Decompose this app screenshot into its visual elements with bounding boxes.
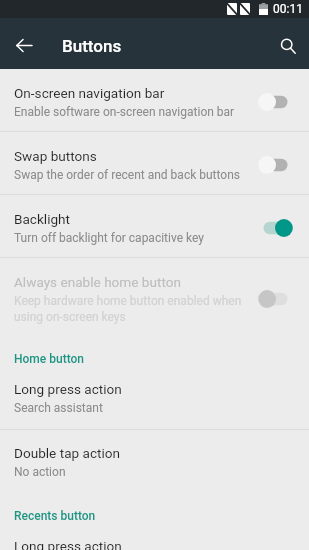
staticText: Home button — [14, 352, 84, 366]
staticText: Recents button — [14, 509, 96, 523]
button[interactable]: Double tap action — [0, 430, 309, 493]
button[interactable]: Always enable home button — [0, 258, 309, 336]
button[interactable]: Swap buttons — [0, 132, 309, 194]
staticText: Backlight — [14, 211, 71, 227]
button[interactable]: Long press action — [0, 523, 309, 550]
staticText: Long press action — [14, 381, 122, 397]
staticText: No action — [14, 465, 66, 479]
staticText: Double tap action — [14, 445, 121, 461]
button[interactable]: Long press action — [0, 366, 309, 429]
staticText: 00:11 — [273, 2, 303, 16]
button[interactable]: Search — [263, 21, 309, 67]
button[interactable]: Back — [0, 20, 48, 68]
staticText: Enable software on-screen navigation bar — [14, 105, 235, 119]
button[interactable]: On-screen navigation bar — [0, 69, 309, 131]
staticText: Swap buttons — [14, 148, 97, 164]
staticText: Search assistant — [14, 401, 103, 415]
staticText: Swap the order of recent and back button… — [14, 168, 240, 182]
staticText: Long press action — [14, 538, 122, 550]
staticText: Keep hardware home button enabled when u… — [14, 294, 254, 324]
button[interactable]: Backlight — [0, 195, 309, 257]
staticText: Buttons — [62, 36, 122, 56]
staticText: On-screen navigation bar — [14, 85, 165, 101]
staticText: Always enable home button — [14, 274, 182, 290]
staticText: Turn off backlight for capacitive key — [14, 231, 204, 245]
